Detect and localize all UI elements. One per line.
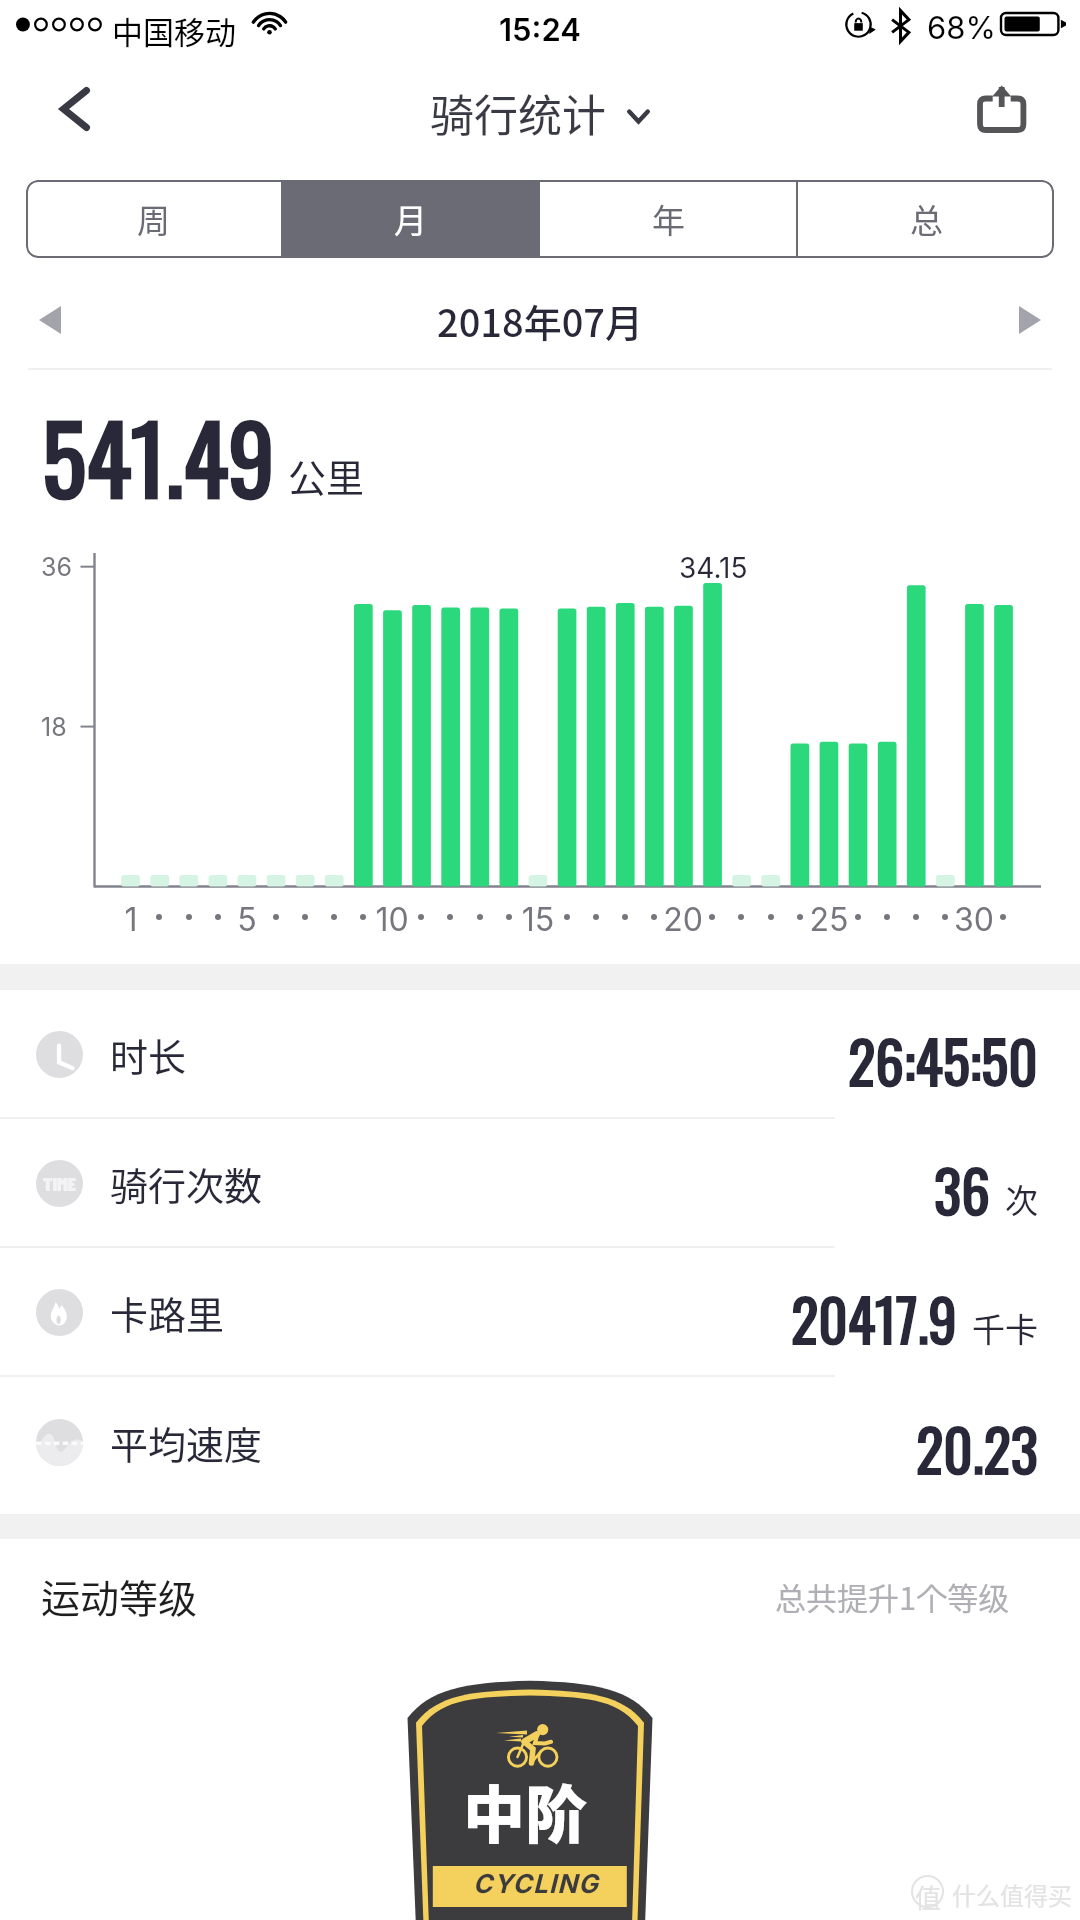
staticText: 20417.9 [791, 1276, 957, 1360]
button[interactable]: 周 [26, 180, 281, 258]
button[interactable]: 骑行统计 [430, 81, 650, 145]
staticText: 中阶 [463, 1766, 588, 1856]
staticText: 1 [101, 900, 161, 939]
button[interactable]: Back [20, 61, 126, 167]
staticText: 5 [217, 900, 277, 939]
staticText: 15:24 [499, 11, 581, 49]
staticText: 2018年07月 [437, 293, 643, 348]
staticText: 36 [934, 1147, 990, 1231]
button[interactable]: 总 [798, 180, 1054, 258]
staticText: 年 [652, 195, 685, 243]
staticText: 68% [927, 9, 996, 47]
staticText: 平均速度 [110, 1415, 263, 1470]
button[interactable]: 年 [540, 180, 796, 258]
staticText: 15 [508, 900, 568, 939]
staticText: 公里 [288, 448, 365, 503]
staticText: 36 [41, 552, 72, 582]
staticText: 541.49 [42, 387, 275, 525]
staticText: 骑行统计 [430, 81, 606, 145]
button[interactable]: 卡路里 [0, 1248, 1080, 1377]
staticText: 值 [915, 1878, 942, 1916]
staticText: 30 [944, 900, 1004, 939]
staticText: 中国移动 [112, 8, 236, 53]
staticText: 34.15 [679, 551, 748, 585]
staticText: 20 [653, 900, 713, 939]
button[interactable]: TIME [0, 1119, 1080, 1248]
staticText: 运动等级 [41, 1568, 198, 1624]
staticText: 20.23 [916, 1406, 1038, 1490]
staticText: 时长 [110, 1027, 187, 1082]
staticText: 骑行次数 [110, 1156, 263, 1211]
staticText: 周 [137, 195, 170, 243]
staticText: TIME [43, 1172, 77, 1195]
button[interactable]: Share [948, 61, 1054, 167]
staticText: 18 [41, 712, 67, 742]
button[interactable]: Previous month [0, 275, 100, 365]
staticText: 千卡 [972, 1304, 1038, 1352]
staticText: 26:45:50 [848, 1018, 1038, 1102]
button[interactable]: Next month [980, 275, 1080, 365]
staticText: 10 [362, 900, 422, 939]
staticText: 月 [394, 195, 427, 243]
staticText: 什么值得买 [952, 1877, 1072, 1912]
staticText: 总 [910, 195, 943, 243]
button[interactable]: 时长 [0, 990, 1080, 1119]
staticText: 总共提升1个等级 [775, 1574, 1010, 1619]
staticText: 卡路里 [110, 1285, 225, 1340]
staticText: CYCLING [473, 1868, 600, 1899]
staticText: 次 [1005, 1175, 1038, 1223]
button[interactable]: 月 [283, 180, 538, 258]
staticText: 25 [799, 900, 859, 939]
button[interactable]: 平均速度 [0, 1378, 1080, 1507]
